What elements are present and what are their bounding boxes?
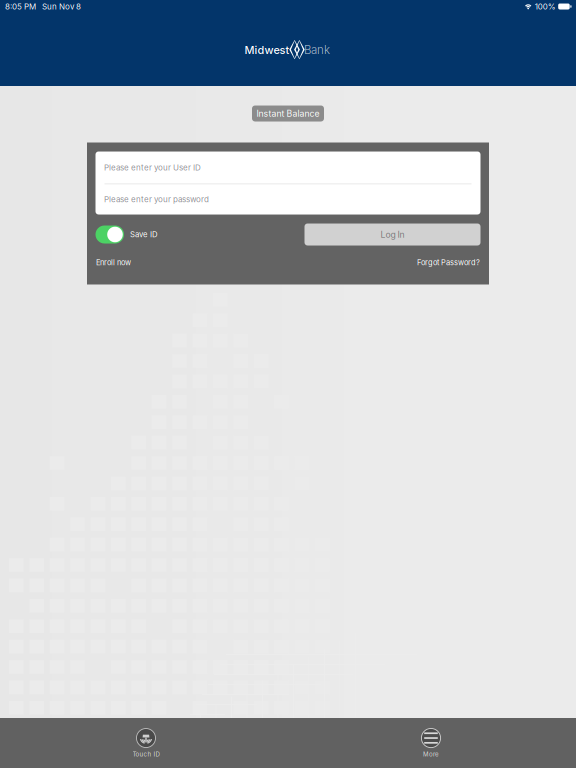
staticText: Forgot Password?	[417, 258, 480, 267]
staticText: Please enter your password	[104, 195, 209, 204]
staticText: Touch ID	[132, 750, 159, 758]
staticText: Sun Nov 8	[42, 2, 81, 11]
staticText: Enroll now	[96, 258, 131, 267]
staticText: More	[423, 750, 439, 758]
button[interactable]: Enroll now	[96, 257, 131, 267]
staticText: 100%	[535, 2, 556, 11]
staticText: Midwest	[244, 43, 289, 56]
staticText: Save ID	[130, 230, 158, 239]
button[interactable]: Please enter your User ID	[95, 151, 480, 183]
button[interactable]: Log In	[304, 223, 480, 245]
button[interactable]: Instant Balance	[252, 105, 324, 121]
staticText: Bank	[304, 43, 330, 57]
button[interactable]: Forgot Password?	[417, 257, 480, 267]
button[interactable]: Save ID	[95, 223, 158, 245]
staticText: 8:05 PM	[5, 2, 36, 11]
staticText: Log In	[380, 229, 404, 240]
staticText: Please enter your User ID	[104, 163, 201, 172]
button[interactable]: Touch ID	[101, 719, 191, 767]
button[interactable]: Please enter your password	[95, 184, 480, 214]
staticText: Instant Balance	[256, 108, 319, 119]
button[interactable]: More	[386, 719, 476, 767]
